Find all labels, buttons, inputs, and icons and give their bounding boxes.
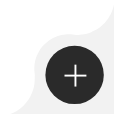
button[interactable]: Add — [0, 0, 114, 114]
